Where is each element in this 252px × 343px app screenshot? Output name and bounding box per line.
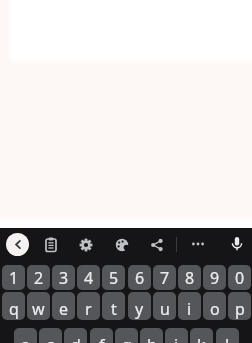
button[interactable]: a — [14, 328, 37, 343]
staticText: o — [210, 298, 220, 320]
staticText: w — [32, 298, 45, 320]
button[interactable]: j — [165, 328, 188, 343]
staticText: e — [59, 298, 69, 320]
button[interactable] — [225, 232, 249, 256]
staticText: 4 — [84, 267, 94, 289]
staticText: 2 — [34, 267, 44, 289]
button[interactable]: u — [153, 292, 176, 320]
staticText: f — [99, 334, 105, 343]
staticText: t — [111, 298, 117, 320]
staticText: 7 — [160, 267, 170, 289]
button[interactable] — [110, 233, 134, 257]
staticText: 3 — [59, 267, 69, 289]
button[interactable] — [39, 233, 63, 257]
staticText: 1 — [9, 267, 19, 289]
staticText: s — [47, 334, 55, 343]
staticText: q — [9, 298, 19, 320]
button[interactable]: t — [102, 292, 125, 320]
button[interactable] — [74, 233, 98, 257]
staticText: k — [197, 334, 206, 343]
staticText: 5 — [109, 267, 119, 289]
button[interactable]: h — [140, 328, 163, 343]
button[interactable]: l — [216, 328, 239, 343]
staticText: 0 — [235, 267, 245, 289]
button[interactable]: 9 — [203, 265, 226, 290]
staticText: h — [147, 334, 157, 343]
button[interactable]: i — [178, 292, 201, 320]
button[interactable]: e — [52, 292, 75, 320]
button[interactable]: p — [228, 292, 251, 320]
button[interactable] — [186, 232, 210, 256]
button[interactable]: 5 — [102, 265, 125, 290]
button[interactable]: y — [128, 292, 151, 320]
staticText: r — [85, 298, 92, 320]
button[interactable]: 2 — [27, 265, 50, 290]
staticText: 8 — [185, 267, 195, 289]
button[interactable]: s — [39, 328, 62, 343]
button[interactable]: 4 — [77, 265, 100, 290]
button[interactable] — [145, 233, 169, 257]
staticText: p — [235, 298, 245, 320]
button[interactable]: 0 — [228, 265, 251, 290]
button[interactable]: r — [77, 292, 100, 320]
staticText: d — [71, 334, 81, 343]
staticText: j — [174, 334, 179, 343]
button[interactable]: 3 — [52, 265, 75, 290]
staticText: 9 — [210, 267, 220, 289]
staticText: a — [21, 334, 30, 343]
button[interactable]: q — [2, 292, 25, 320]
staticText: u — [160, 298, 170, 320]
button[interactable] — [6, 233, 29, 256]
staticText: l — [225, 334, 230, 343]
button[interactable]: 7 — [153, 265, 176, 290]
button[interactable]: 6 — [128, 265, 151, 290]
staticText: g — [122, 334, 132, 343]
button[interactable]: g — [115, 328, 138, 343]
button[interactable]: k — [190, 328, 213, 343]
staticText: i — [187, 298, 192, 320]
staticText: 6 — [135, 267, 145, 289]
button[interactable]: o — [203, 292, 226, 320]
button[interactable]: w — [27, 292, 50, 320]
button[interactable]: 1 — [2, 265, 25, 290]
staticText: y — [135, 298, 144, 320]
button[interactable]: d — [64, 328, 87, 343]
button[interactable]: f — [90, 328, 113, 343]
button[interactable]: 8 — [178, 265, 201, 290]
